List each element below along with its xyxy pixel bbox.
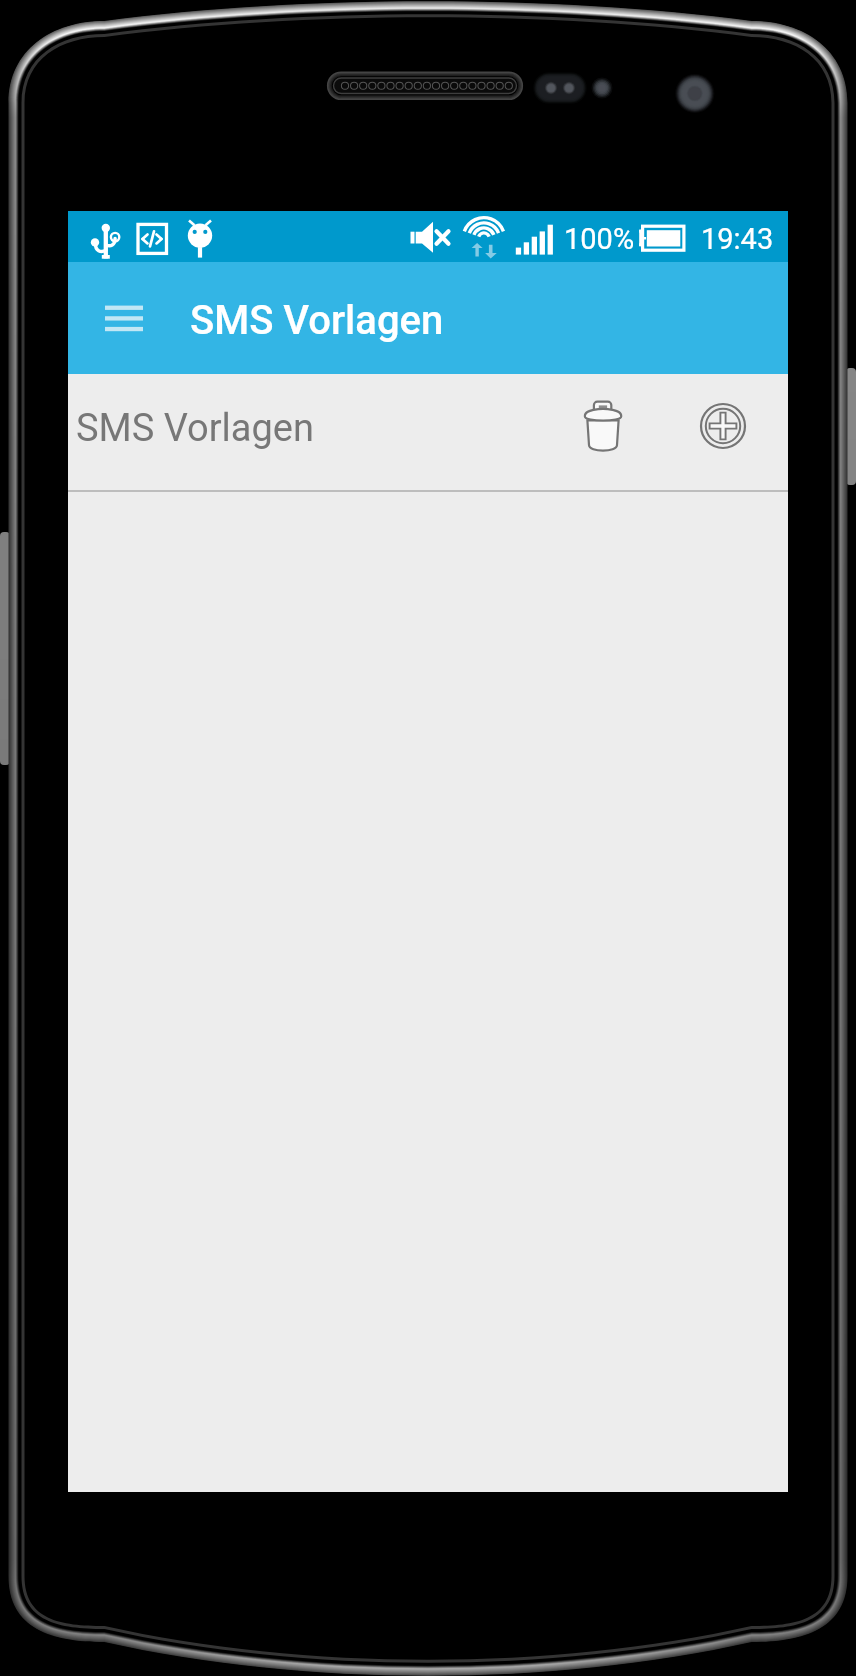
button[interactable]: Add (663, 374, 783, 490)
button[interactable]: Open navigation drawer (68, 262, 180, 374)
staticText: 100% (564, 222, 635, 256)
staticText: SMS Vorlagen (190, 297, 444, 344)
staticText: SMS Vorlagen (76, 406, 315, 451)
staticText: 19:43 (701, 222, 774, 256)
button[interactable]: Delete (543, 374, 663, 490)
